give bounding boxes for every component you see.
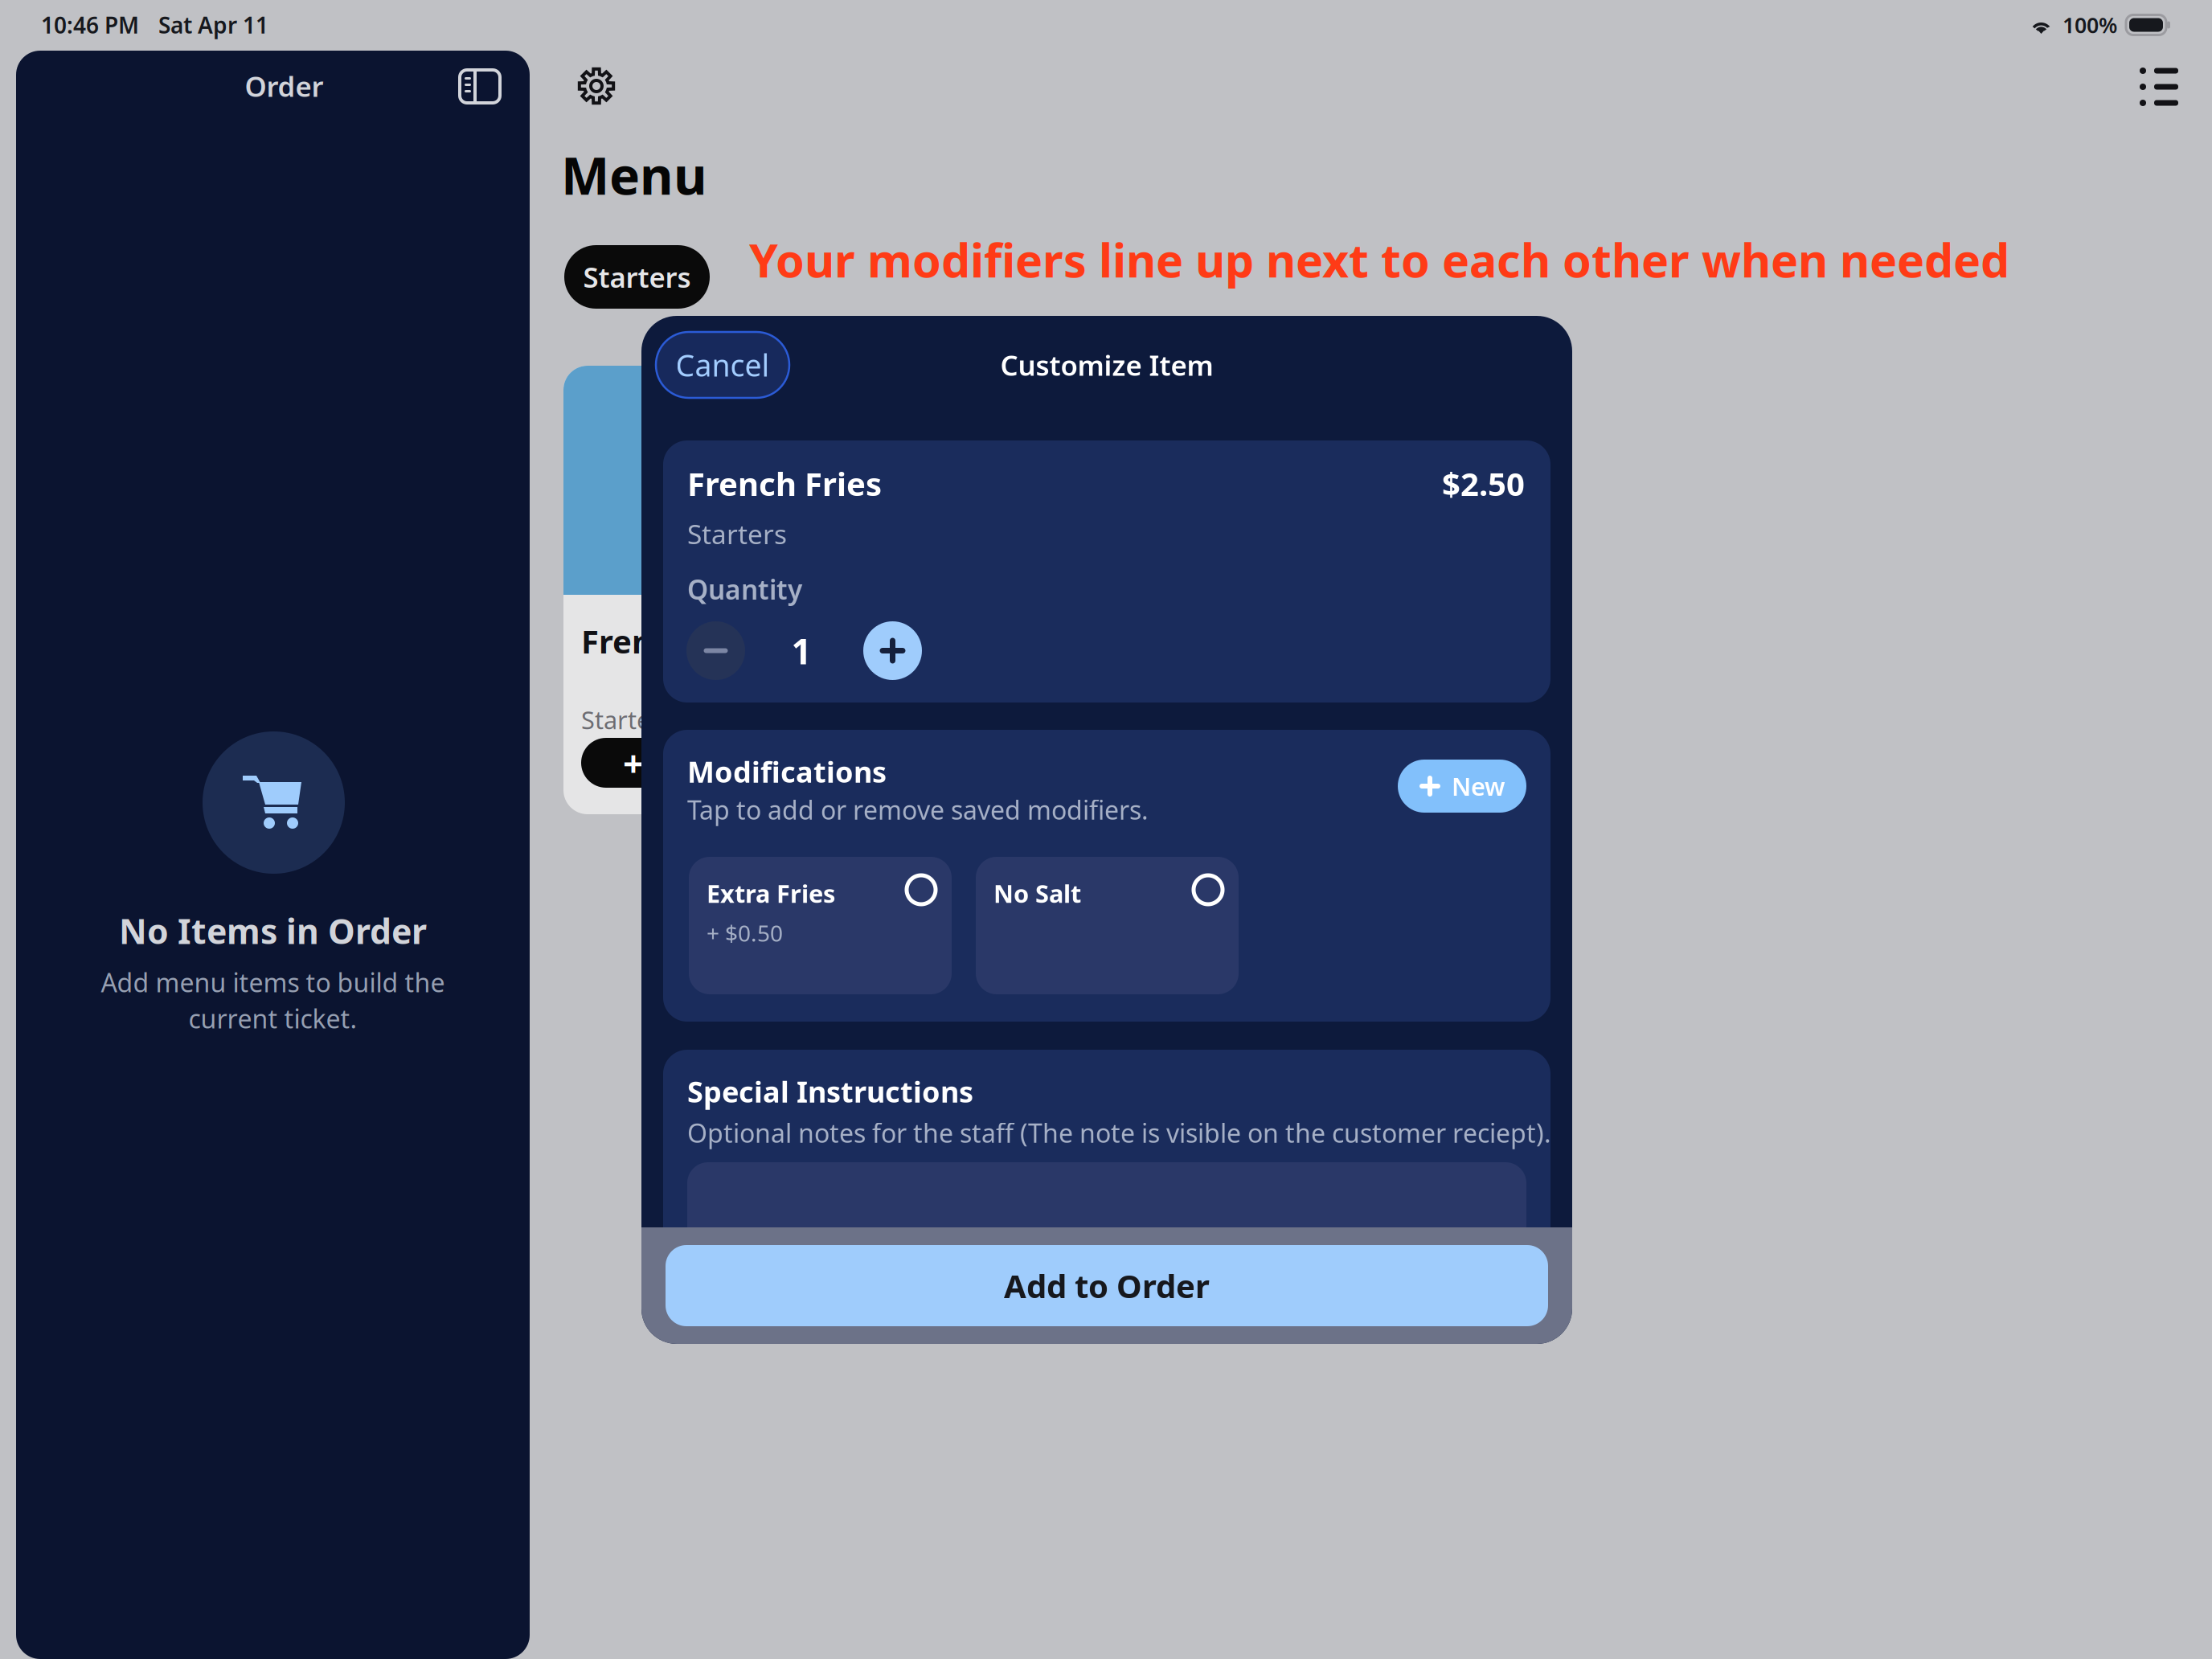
staticText: Add to Order — [1004, 1264, 1210, 1307]
staticText: No Items in Order — [119, 908, 427, 954]
staticText: Starters — [687, 516, 787, 552]
button[interactable]: New — [1398, 760, 1526, 813]
staticText: Special Instructions — [687, 1072, 973, 1111]
staticText: No Salt — [993, 877, 1081, 910]
staticText: French Fries — [687, 462, 882, 505]
staticText: 1 — [791, 627, 811, 674]
staticText: + — [623, 739, 644, 787]
staticText: 10:46 PM — [41, 10, 139, 40]
staticText: Sat Apr 11 — [158, 10, 268, 40]
staticText: Modifications — [687, 752, 887, 791]
button[interactable]: List View — [2140, 68, 2178, 106]
staticText: Quantity — [687, 571, 802, 607]
button[interactable]: Settings — [577, 67, 616, 105]
button[interactable]: Increase quantity — [863, 621, 922, 680]
staticText: current ticket. — [188, 1001, 357, 1036]
staticText: Fren — [581, 620, 653, 662]
button[interactable]: Cancel — [656, 332, 789, 398]
staticText: Menu — [561, 141, 707, 209]
staticText: $2.50 — [1442, 462, 1525, 505]
staticText: Extra Fries — [707, 877, 835, 910]
button[interactable]: Hide Sidebar — [450, 60, 510, 113]
staticText: Customize Item — [1000, 346, 1213, 383]
button[interactable]: Decrease quantity — [686, 621, 745, 680]
staticText: Add menu items to build the — [101, 965, 445, 999]
staticText: Optional notes for the staff (The note i… — [687, 1116, 1551, 1150]
staticText: Tap to add or remove saved modifiers. — [687, 793, 1149, 827]
staticText: Starters — [583, 258, 691, 295]
staticText: + $0.50 — [707, 918, 783, 948]
button[interactable]: Add to Order — [666, 1245, 1548, 1326]
staticText: Starte — [581, 703, 650, 736]
staticText: New — [1452, 770, 1505, 802]
staticText: Cancel — [676, 345, 770, 385]
staticText: Order — [245, 68, 324, 104]
staticText: Your modifiers line up next to each othe… — [749, 229, 2009, 290]
staticText: 100% — [2062, 11, 2117, 39]
